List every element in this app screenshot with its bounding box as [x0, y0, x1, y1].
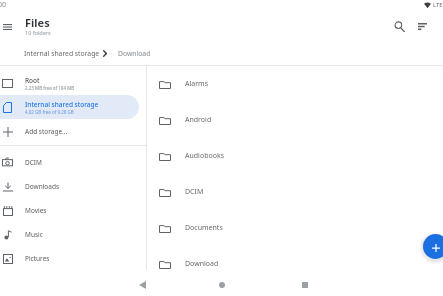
- button[interactable]: Home: [211, 274, 233, 296]
- button[interactable]: Back: [131, 274, 153, 296]
- staticText: Audiobooks: [185, 151, 225, 161]
- button[interactable]: Download: [147, 246, 443, 282]
- staticText: 2.23 MB free of 104 MB: [25, 85, 75, 91]
- staticText: 00: [0, 0, 7, 10]
- button[interactable]: Add storage...: [0, 119, 139, 143]
- button[interactable]: Pictures: [0, 246, 139, 270]
- button[interactable]: DCIM: [0, 150, 139, 174]
- button[interactable]: Search: [389, 16, 409, 36]
- staticText: Root: [25, 76, 40, 85]
- button[interactable]: Recents: [294, 274, 316, 296]
- staticText: 10 folders: [25, 29, 51, 36]
- button[interactable]: Menu: [0, 17, 17, 36]
- staticText: Pictures: [25, 254, 50, 263]
- button[interactable]: Add: [423, 234, 443, 259]
- button[interactable]: Audiobooks: [147, 138, 443, 174]
- button[interactable]: Download: [118, 49, 151, 58]
- staticText: DCIM: [25, 158, 42, 167]
- button[interactable]: Root: [0, 71, 139, 95]
- button[interactable]: Downloads: [0, 174, 139, 198]
- button[interactable]: Internal shared storage: [24, 49, 100, 58]
- button[interactable]: Android: [147, 102, 443, 138]
- staticText: DCIM: [185, 187, 204, 197]
- staticText: Documents: [185, 223, 223, 233]
- staticText: Add storage...: [25, 127, 68, 136]
- staticText: Alarms: [185, 79, 208, 89]
- staticText: Files: [25, 15, 50, 30]
- button[interactable]: Alarms: [147, 66, 443, 102]
- button[interactable]: Sort: [412, 16, 432, 36]
- button[interactable]: Internal shared storage: [0, 95, 139, 119]
- button[interactable]: Music: [0, 222, 139, 246]
- staticText: Download: [118, 49, 151, 58]
- staticText: Android: [185, 115, 212, 125]
- staticText: Music: [25, 230, 43, 239]
- button[interactable]: Movies: [147, 282, 443, 296]
- staticText: Downloads: [25, 182, 60, 191]
- staticText: Download: [185, 259, 219, 269]
- button[interactable]: Documents: [147, 210, 443, 246]
- staticText: Movies: [25, 206, 47, 215]
- staticText: Internal shared storage: [25, 100, 99, 109]
- button[interactable]: DCIM: [147, 174, 443, 210]
- staticText: Internal shared storage: [24, 49, 100, 58]
- button[interactable]: Movies: [0, 198, 139, 222]
- staticText: 4.02 GB free of 9.28 GB: [25, 109, 74, 115]
- staticText: LTE: [433, 1, 443, 9]
